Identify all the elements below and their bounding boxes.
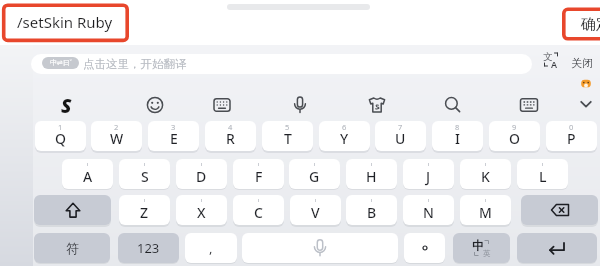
staticText: Y (340, 129, 349, 148)
staticText: 英 (483, 249, 491, 258)
button[interactable]: S (119, 159, 170, 189)
button[interactable]: B (346, 195, 397, 225)
staticText: , (209, 239, 213, 257)
staticText: 文 (543, 51, 553, 63)
staticText: U (395, 129, 406, 148)
staticText: R (226, 129, 235, 148)
staticText: K (481, 167, 490, 186)
staticText: E (170, 129, 178, 148)
staticText: N (423, 203, 434, 222)
button[interactable] (404, 233, 445, 263)
button[interactable] (138, 88, 172, 122)
staticText: X (197, 203, 206, 222)
button[interactable]: 中⇌日˅ (42, 57, 79, 69)
button[interactable] (242, 233, 398, 263)
button[interactable]: C (233, 195, 284, 225)
button[interactable]: 1 (35, 121, 86, 151)
button[interactable] (49, 88, 83, 122)
staticText: 1 (58, 122, 63, 132)
staticText: B (367, 203, 377, 222)
staticText: 3 (171, 122, 176, 132)
staticText: A (551, 58, 558, 70)
staticText: 中 (472, 238, 484, 253)
button[interactable]: F (233, 159, 284, 189)
button[interactable]: 确定 (581, 14, 600, 34)
button[interactable]: Z (119, 195, 170, 225)
button[interactable]: N (403, 195, 454, 225)
staticText: 8 (455, 122, 460, 132)
staticText: F (255, 167, 263, 186)
button[interactable]: 2 (91, 121, 142, 151)
button[interactable] (569, 88, 600, 122)
button[interactable] (360, 88, 394, 122)
button[interactable]: X (176, 195, 227, 225)
button[interactable]: 关闭 (569, 55, 595, 70)
staticText: W (110, 129, 124, 148)
button[interactable]: A (62, 159, 113, 189)
staticText: /setSkin Ruby (17, 12, 113, 32)
staticText: T (284, 129, 292, 148)
button[interactable]: 0 (546, 121, 597, 151)
staticText: 关闭 (571, 56, 593, 70)
staticText: V (311, 203, 320, 222)
button[interactable] (0, 0, 560, 45)
button[interactable]: , (185, 233, 237, 263)
staticText: O (509, 129, 520, 148)
button[interactable]: 4 (205, 121, 256, 151)
staticText: 7 (398, 122, 403, 132)
staticText: P (567, 129, 576, 148)
staticText: 确定 (581, 15, 600, 34)
button[interactable] (31, 54, 532, 74)
button[interactable] (517, 233, 597, 263)
button[interactable]: 6 (319, 121, 370, 151)
button[interactable] (436, 88, 470, 122)
staticText: 123 (137, 239, 160, 257)
staticText: 中⇌日˅ (50, 58, 72, 68)
button[interactable]: L (517, 159, 568, 189)
staticText: 9 (512, 122, 517, 132)
button[interactable]: 8 (432, 121, 483, 151)
staticText: 符 (66, 240, 79, 256)
staticText: 2 (114, 122, 119, 132)
button[interactable]: 3 (148, 121, 199, 151)
staticText: 点击这里，开始翻译 (83, 57, 187, 71)
staticText: 4 (228, 122, 233, 132)
staticText: L (539, 167, 547, 186)
staticText: Z (140, 203, 149, 222)
staticText: G (309, 167, 320, 186)
button[interactable] (205, 88, 239, 122)
button[interactable] (34, 195, 111, 225)
button[interactable]: V (290, 195, 341, 225)
button[interactable]: 7 (375, 121, 426, 151)
staticText: H (366, 167, 377, 186)
staticText: 0 (569, 122, 574, 132)
button[interactable] (512, 88, 546, 122)
staticText: I (455, 129, 460, 148)
button[interactable] (521, 195, 598, 225)
button[interactable]: 中 (453, 233, 510, 263)
button[interactable]: K (460, 159, 511, 189)
button[interactable]: M (460, 195, 511, 225)
button[interactable]: H (346, 159, 397, 189)
button[interactable] (283, 88, 317, 122)
staticText: 5 (285, 122, 290, 132)
staticText: C (254, 203, 263, 222)
staticText: S (141, 167, 149, 186)
button[interactable]: D (176, 159, 227, 189)
button[interactable]: G (289, 159, 340, 189)
staticText: A (83, 167, 93, 186)
staticText: D (196, 167, 207, 186)
staticText: Q (55, 129, 66, 148)
button[interactable] (540, 51, 562, 71)
button[interactable]: 5 (262, 121, 313, 151)
button[interactable]: 符 (34, 233, 110, 263)
staticText: S (61, 93, 72, 117)
staticText: J (426, 167, 431, 186)
button[interactable]: 123 (118, 233, 179, 263)
button[interactable]: J (403, 159, 454, 189)
staticText: 6 (342, 122, 347, 132)
staticText: M (479, 203, 492, 222)
button[interactable]: 9 (489, 121, 540, 151)
